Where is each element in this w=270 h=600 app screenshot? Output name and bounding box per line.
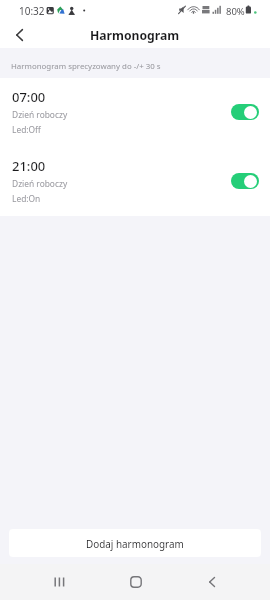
button[interactable]: 07:00: [0, 78, 270, 147]
button[interactable]: Back: [189, 564, 234, 600]
staticText: Dzień roboczy: [12, 178, 68, 189]
staticText: Led:On: [12, 193, 41, 204]
staticText: 07:00: [12, 88, 46, 106]
button[interactable]: 21:00: [0, 147, 270, 216]
staticText: Harmonogram: [90, 27, 180, 44]
button[interactable]: Back: [4, 22, 34, 48]
staticText: Led:Off: [12, 124, 41, 135]
button[interactable]: Toggle schedule: [231, 173, 259, 189]
button[interactable]: Toggle schedule: [231, 104, 259, 120]
staticText: Dzień roboczy: [12, 109, 68, 120]
staticText: Harmonogram sprecyzowany do -/+ 30 s: [11, 61, 161, 72]
button[interactable]: Dodaj harmonogram: [9, 529, 261, 557]
staticText: 10:32: [19, 4, 45, 18]
staticText: 21:00: [12, 157, 46, 175]
staticText: 80%: [226, 5, 245, 18]
staticText: Dodaj harmonogram: [86, 537, 184, 550]
button[interactable]: Home: [113, 564, 158, 600]
button[interactable]: Recent apps: [37, 564, 82, 600]
